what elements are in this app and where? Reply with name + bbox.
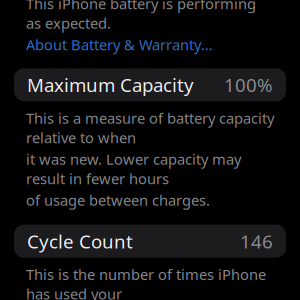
staticText: 100% (224, 72, 273, 97)
staticText: Cycle Count (27, 229, 133, 254)
button[interactable]: Maximum Capacity (14, 68, 286, 101)
staticText: 146 (240, 229, 273, 254)
staticText: This is a measure of battery capacity re… (26, 108, 274, 147)
staticText: it was new. Lower capacity may result in… (26, 149, 241, 188)
staticText: Maximum Capacity (27, 72, 194, 97)
staticText: This is the number of times iPhone has u… (26, 265, 266, 300)
staticText: This iPhone battery is performing as exp… (26, 0, 256, 33)
staticText: of usage between charges. (26, 190, 210, 210)
button[interactable]: Cycle Count (14, 225, 286, 258)
staticText: About Battery & Warranty… (26, 35, 213, 54)
button[interactable]: About Battery & Warranty… (26, 35, 213, 54)
